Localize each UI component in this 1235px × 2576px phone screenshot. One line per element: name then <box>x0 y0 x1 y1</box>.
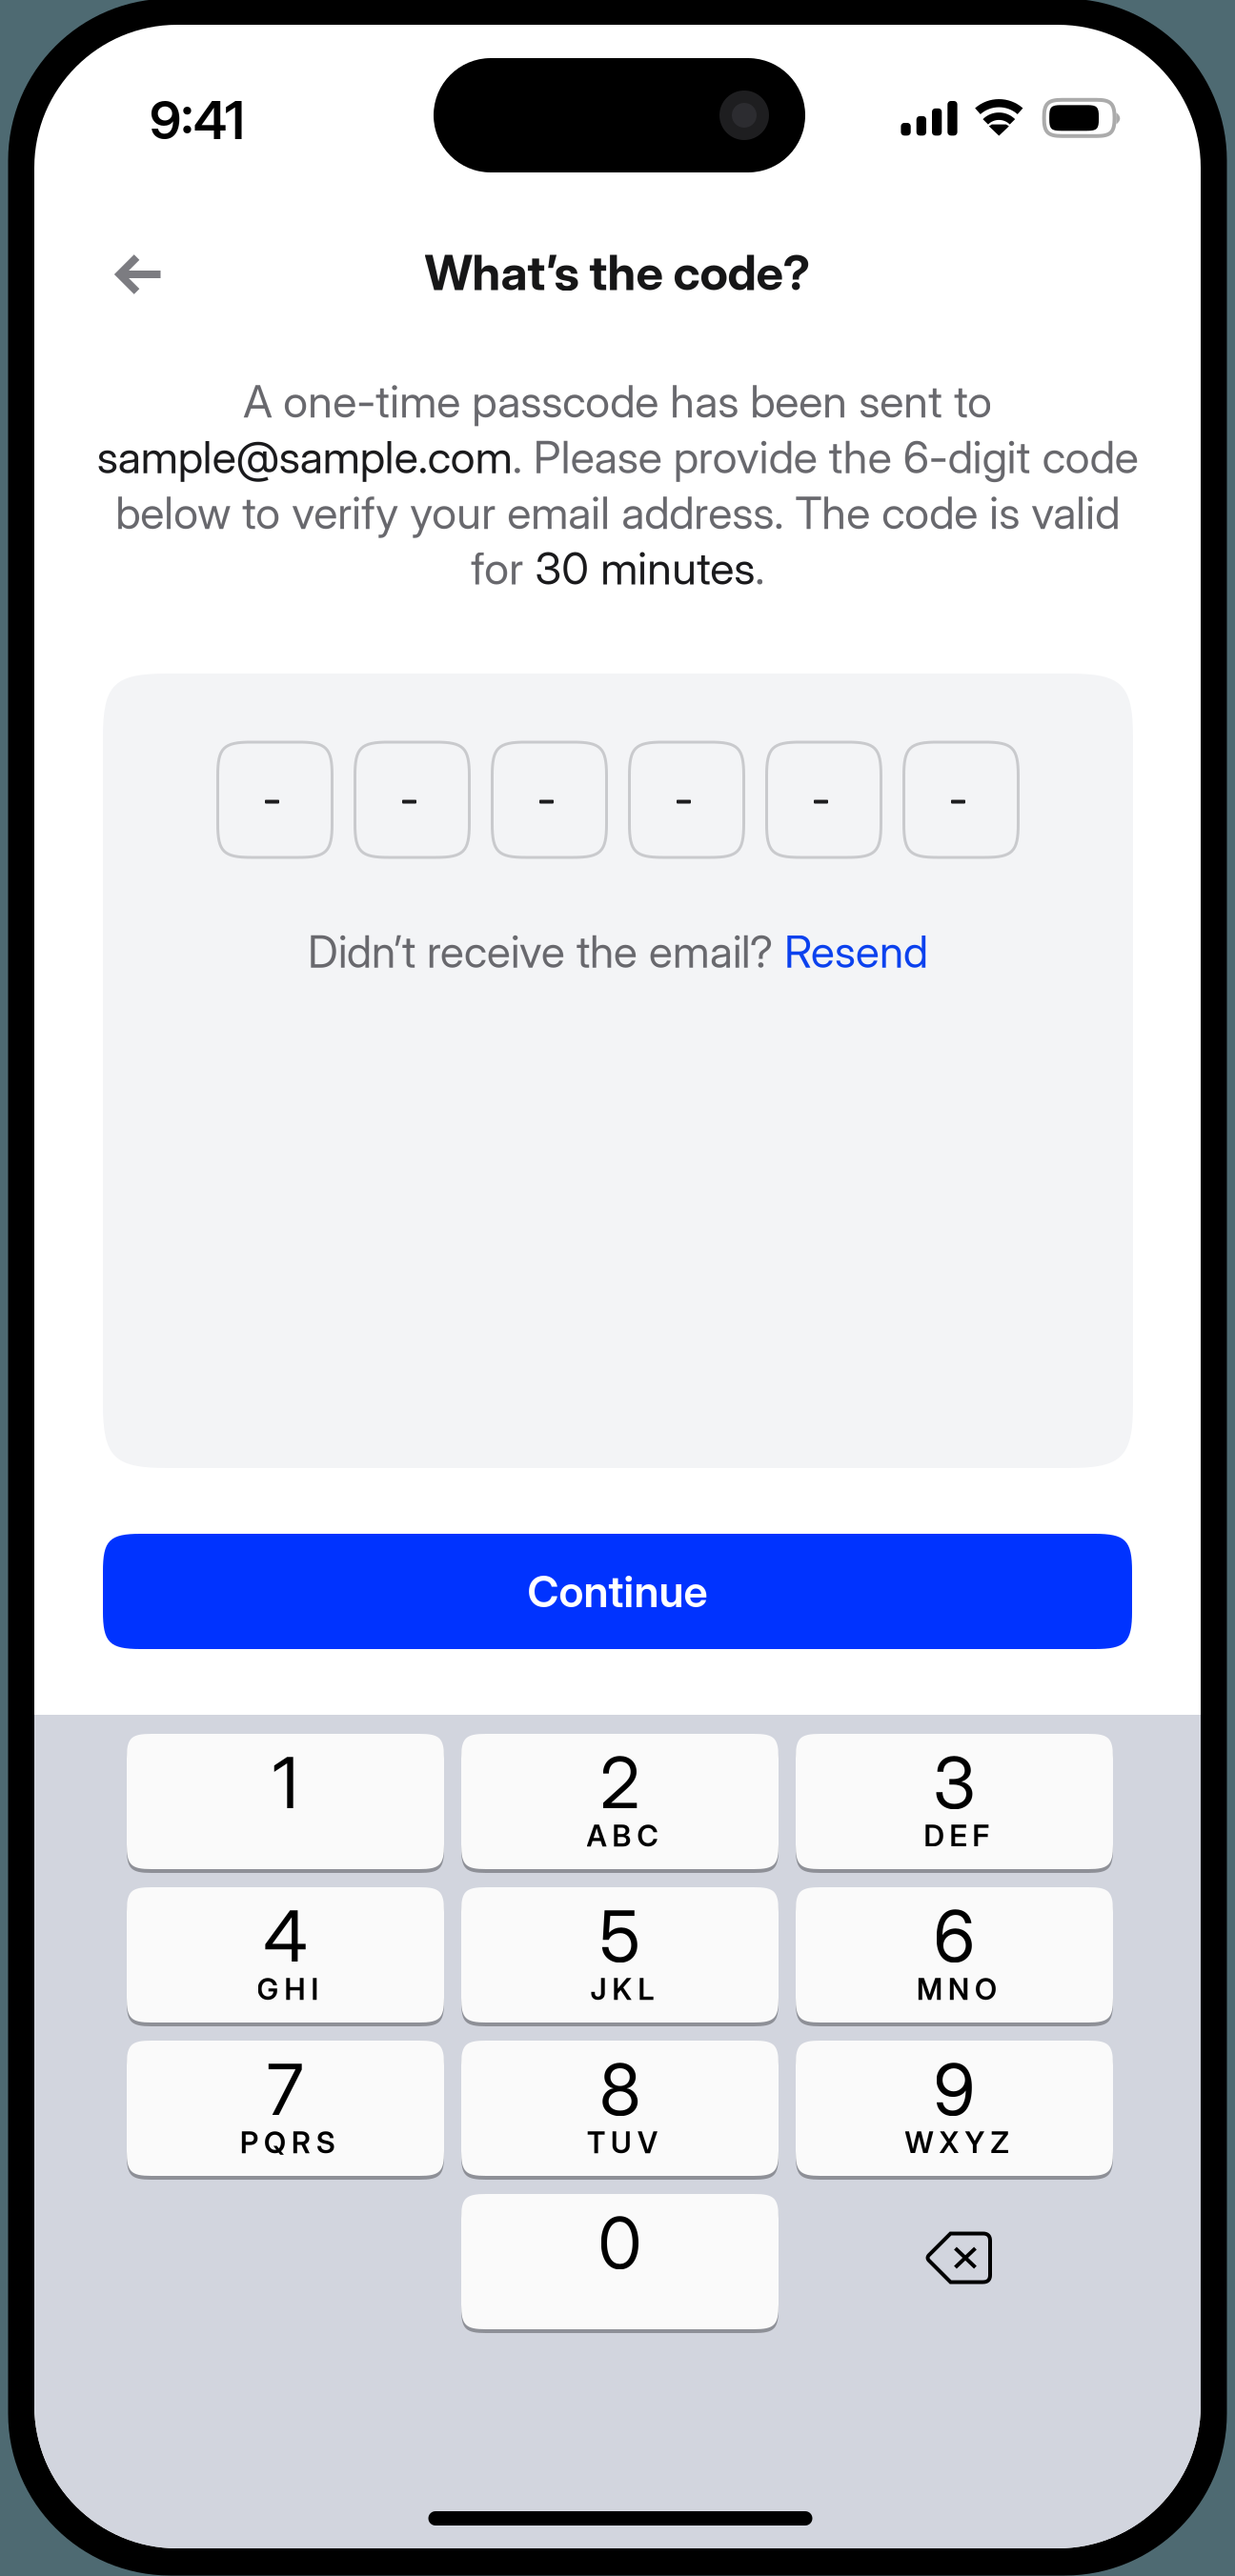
staticText: TUV <box>587 2125 658 2160</box>
staticText: Didn’t receive the email? <box>308 925 784 978</box>
button[interactable]: Didn’t receive the email? <box>103 923 1133 980</box>
button[interactable]: 0 <box>461 2194 779 2333</box>
button[interactable]: 1 <box>127 1734 444 1873</box>
button[interactable]: 5 <box>461 1887 779 2026</box>
button[interactable]: Continue <box>103 1534 1132 1649</box>
staticText: 2 <box>600 1739 640 1825</box>
staticText: What’s the code? <box>425 243 810 302</box>
staticText: 3 <box>933 1739 976 1825</box>
button[interactable]: 6 <box>796 1887 1113 2026</box>
staticText: DEF <box>924 1818 990 1853</box>
button[interactable]: 3 <box>796 1734 1113 1873</box>
staticText: Resend <box>784 925 928 978</box>
staticText: ABC <box>587 1818 658 1853</box>
staticText: A one-time passcode has been sent to sam… <box>97 374 1138 595</box>
button[interactable]: 2 <box>461 1734 779 1873</box>
staticText: 7 <box>267 2046 304 2132</box>
staticText: GHI <box>257 1971 319 2007</box>
staticText: PQRS <box>240 2125 335 2160</box>
staticText: MNO <box>917 1971 997 2007</box>
staticText: 6 <box>933 1893 975 1979</box>
staticText: 4 <box>263 1893 307 1979</box>
button[interactable]: Delete <box>796 2194 1113 2333</box>
staticText: 1 <box>273 1739 298 1825</box>
button[interactable]: 4 <box>127 1887 444 2026</box>
staticText: 9:41 <box>150 89 245 151</box>
staticText: 0 <box>598 2200 642 2286</box>
staticText: Continue <box>527 1565 708 1618</box>
staticText: 8 <box>599 2046 640 2132</box>
button[interactable]: 8 <box>461 2041 779 2180</box>
staticText: 9 <box>933 2046 975 2132</box>
button[interactable]: 9 <box>796 2041 1113 2180</box>
staticText: 5 <box>599 1893 640 1979</box>
staticText: JKL <box>590 1971 654 2007</box>
button[interactable]: Back <box>83 222 197 327</box>
staticText: WXYZ <box>905 2125 1009 2160</box>
button[interactable]: 7 <box>127 2041 444 2180</box>
